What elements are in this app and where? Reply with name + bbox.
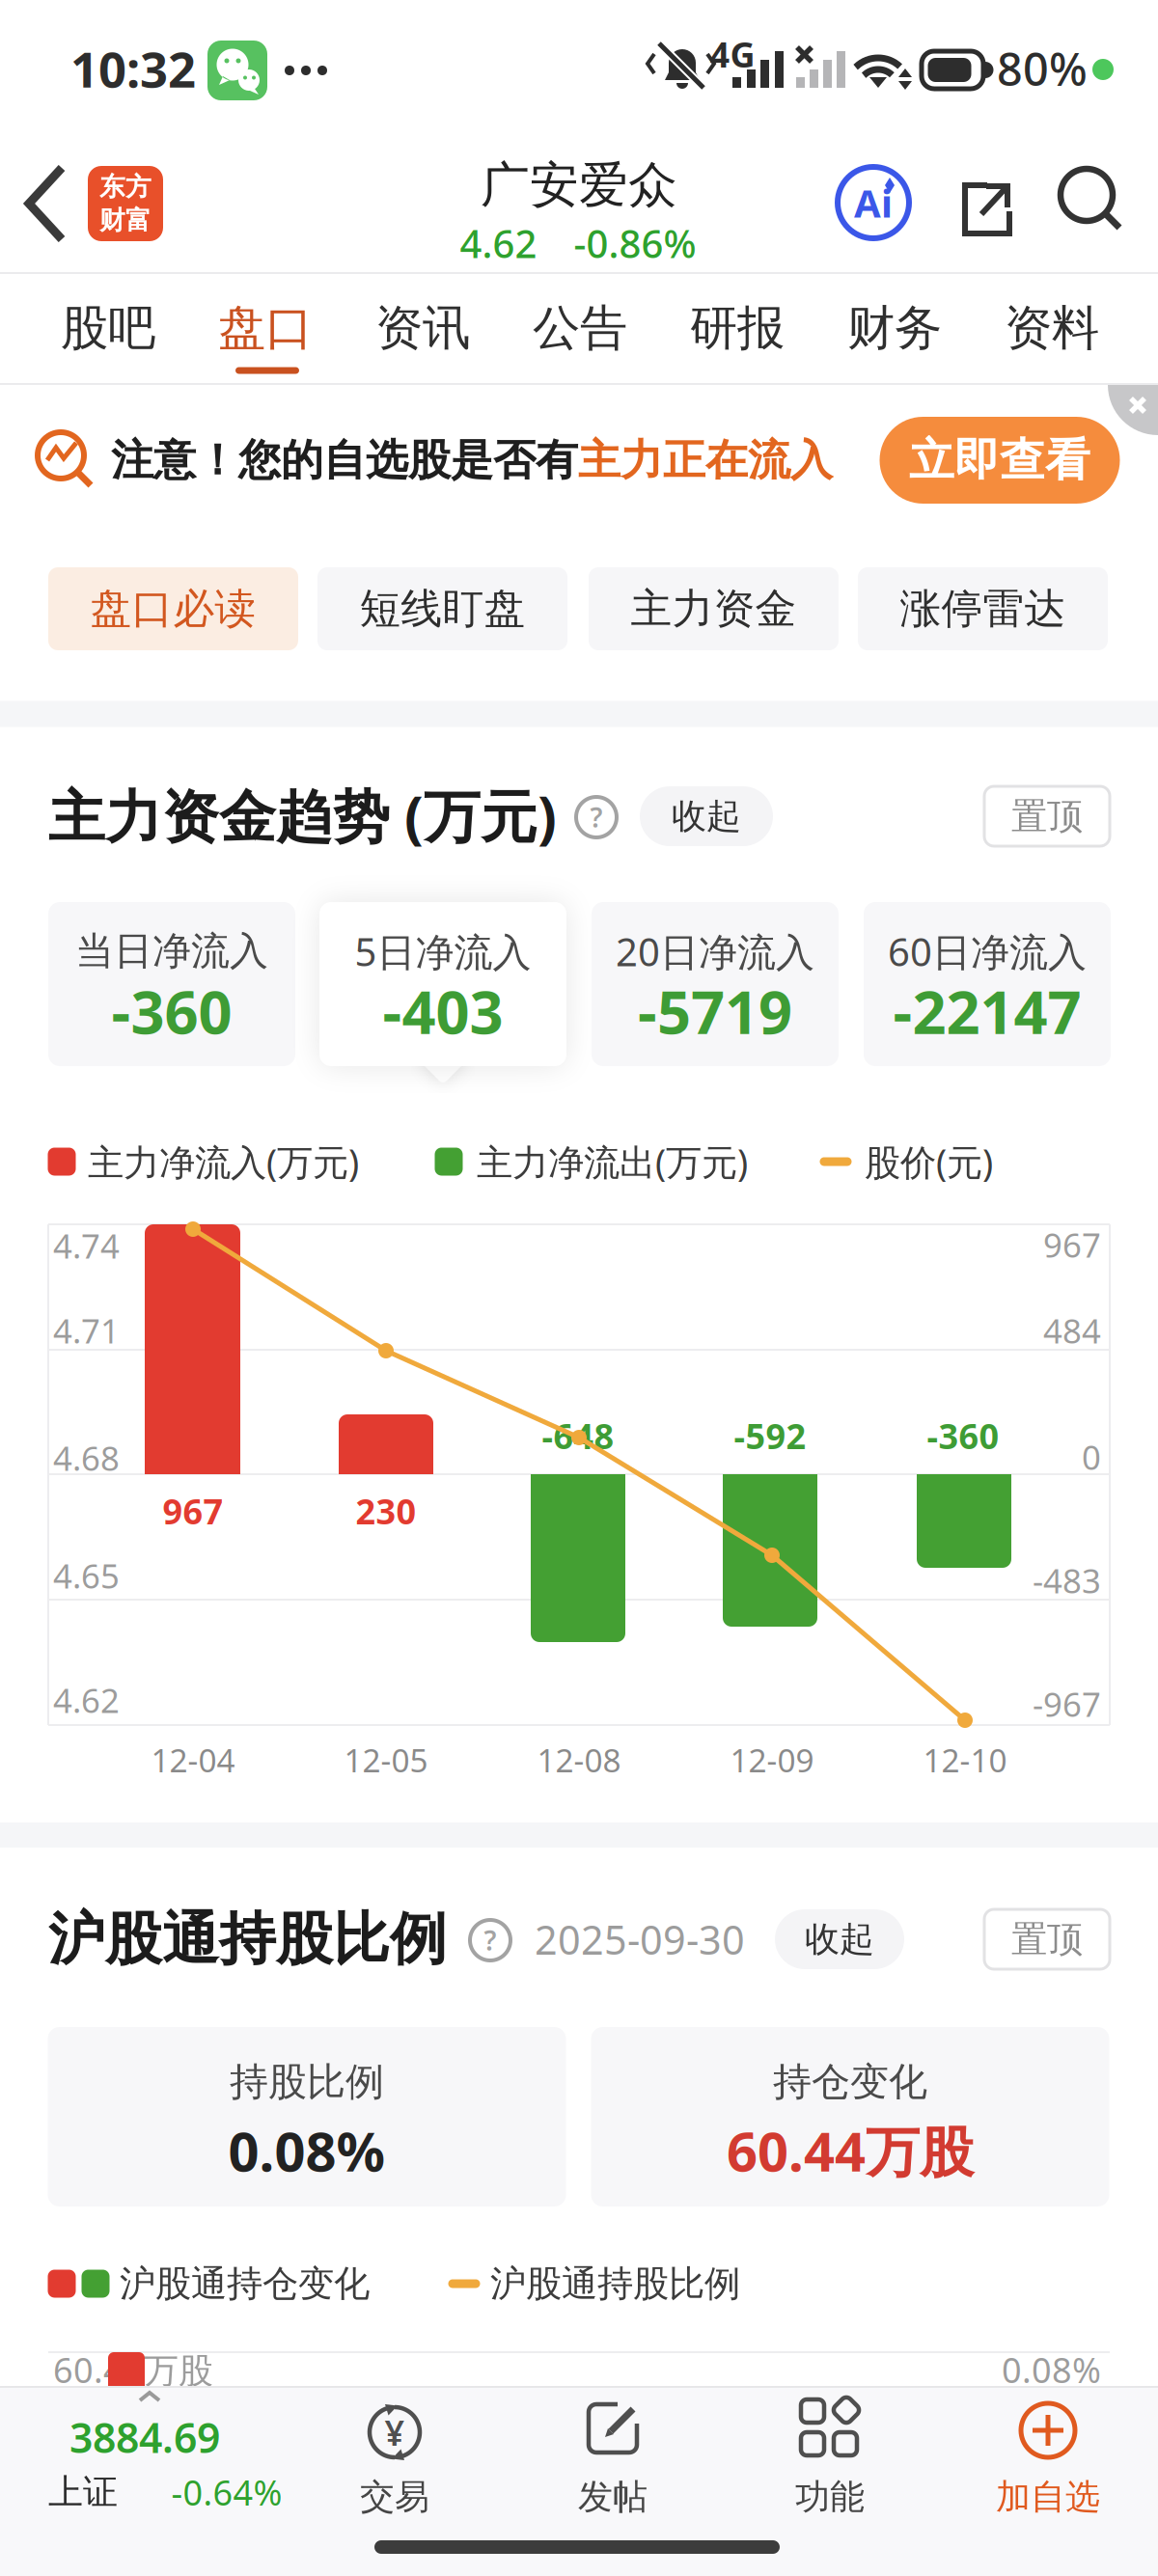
staticText: 主力净流入(万元) <box>88 1138 359 1186</box>
button[interactable]: 东方财富 <box>88 166 163 241</box>
button[interactable]: 发帖 <box>536 2388 690 2571</box>
staticText: 967 <box>1043 1222 1101 1267</box>
staticText: -0.64% <box>171 2469 282 2515</box>
staticText: -648 <box>542 1413 614 1459</box>
staticText: 沪股通持仓变化 <box>120 2262 370 2306</box>
staticText: 沪股通持股比例 <box>48 1905 447 1974</box>
staticText: 持仓变化 <box>773 2058 927 2106</box>
button[interactable]: 上证指数 <box>7 2388 283 2571</box>
staticText: -22147 <box>893 972 1081 1050</box>
staticText: 短线盯盘 <box>359 584 525 634</box>
staticText: 当日净流入 <box>75 928 268 975</box>
staticText: -403 <box>383 972 503 1050</box>
button[interactable]: 盘口 <box>198 278 333 378</box>
staticText: 60.44万股 <box>53 2346 213 2393</box>
button[interactable]: 帮助 <box>574 795 619 839</box>
staticText: 4.74 <box>53 1223 120 1268</box>
staticText: ? <box>590 799 603 835</box>
staticText: 967 <box>163 1488 223 1534</box>
staticText: ? <box>484 1922 496 1958</box>
staticText: 4.62 <box>53 1678 120 1722</box>
staticText: ¥ <box>385 2409 405 2455</box>
staticText: -0.86% <box>574 217 696 269</box>
staticText: 上证 <box>48 2471 118 2513</box>
staticText: 沪股通持股比例 <box>490 2262 740 2306</box>
staticText: 涨停雷达 <box>900 584 1066 634</box>
staticText: 230 <box>356 1488 416 1534</box>
button[interactable]: 公告 <box>512 278 648 378</box>
staticText: 12-04 <box>151 1738 235 1781</box>
button[interactable]: Search <box>1056 166 1125 235</box>
button[interactable]: 短线盯盘 <box>317 567 567 650</box>
staticText: 4G <box>710 31 755 77</box>
button[interactable]: 60日净流入 <box>864 902 1111 1066</box>
staticText: 12-08 <box>537 1738 621 1781</box>
button[interactable]: 立即查看 <box>880 417 1120 504</box>
button[interactable]: 收起 <box>775 1909 904 1969</box>
staticText: 财富 <box>99 205 152 236</box>
staticText: 2025-09-30 <box>535 1913 745 1966</box>
staticText: 置顶 <box>1011 1917 1083 1961</box>
button[interactable]: 研报 <box>670 278 805 378</box>
staticText: -360 <box>927 1413 999 1459</box>
button[interactable]: 财务 <box>827 278 962 378</box>
button[interactable]: 注意！您的自选股是否有 <box>34 407 844 513</box>
staticText: 公告 <box>533 299 627 357</box>
button[interactable]: 主力资金 <box>589 567 839 650</box>
button[interactable]: Back <box>23 164 68 243</box>
staticText: 0 <box>1082 1435 1101 1479</box>
button[interactable]: Ai <box>835 164 912 241</box>
button[interactable]: 当日净流入 <box>48 902 295 1066</box>
button[interactable]: Close <box>1108 385 1158 435</box>
staticText: 发帖 <box>578 2476 648 2518</box>
staticText: 资讯 <box>375 299 470 357</box>
staticText: 12-05 <box>344 1738 428 1781</box>
staticText: 资料 <box>1005 299 1099 357</box>
button[interactable]: 股吧 <box>41 278 176 378</box>
staticText: 10:32 <box>70 36 196 101</box>
staticText: 484 <box>1043 1308 1101 1353</box>
staticText: 研报 <box>690 299 785 357</box>
button[interactable]: 帮助 <box>468 1918 512 1962</box>
staticText: -5719 <box>638 972 792 1050</box>
staticText: -360 <box>111 972 232 1050</box>
staticText: 收起 <box>672 795 741 838</box>
staticText: 20日净流入 <box>616 926 814 977</box>
button[interactable]: 盘口必读 <box>48 567 298 650</box>
staticText: 东方 <box>99 171 152 203</box>
staticText: 盘口 <box>218 299 313 357</box>
staticText: 4.62 <box>460 217 537 269</box>
staticText: 交易 <box>360 2476 429 2518</box>
staticText: 主力正在流入 <box>578 434 833 486</box>
staticText: 60日净流入 <box>888 926 1087 977</box>
button[interactable]: 资讯 <box>355 278 490 378</box>
staticText: 0.08% <box>1002 2346 1101 2393</box>
staticText: 立即查看 <box>909 433 1090 488</box>
button[interactable]: 功能 <box>753 2388 907 2571</box>
button[interactable]: 20日净流入 <box>592 902 839 1066</box>
staticText: -592 <box>734 1413 806 1459</box>
staticText: 4.71 <box>53 1308 120 1353</box>
staticText: 5日净流入 <box>355 926 531 977</box>
button[interactable]: 置顶 <box>984 786 1110 846</box>
button[interactable]: 加自选 <box>971 2388 1125 2571</box>
button[interactable]: 资料 <box>984 278 1119 378</box>
button[interactable]: 收起 <box>640 786 773 846</box>
staticText: 3884.69 <box>69 2410 220 2464</box>
staticText: 80% <box>997 39 1088 98</box>
staticText: 12-09 <box>730 1738 814 1781</box>
staticText: 置顶 <box>1011 794 1083 838</box>
staticText: 注意！您的自选股是否有 <box>111 434 578 486</box>
button[interactable]: 涨停雷达 <box>858 567 1108 650</box>
staticText: 4.68 <box>53 1436 120 1480</box>
staticText: 4.65 <box>53 1553 120 1598</box>
button[interactable]: ¥ <box>317 2388 472 2571</box>
staticText: 财务 <box>847 299 942 357</box>
staticText: 股价(元) <box>865 1138 993 1186</box>
staticText: 60.44万股 <box>727 2115 974 2186</box>
button[interactable]: Share <box>954 175 1018 238</box>
button[interactable]: 置顶 <box>984 1909 1110 1969</box>
button[interactable]: 5日净流入 <box>319 902 566 1066</box>
staticText: 收起 <box>805 1918 874 1961</box>
staticText: 盘口必读 <box>90 584 256 634</box>
